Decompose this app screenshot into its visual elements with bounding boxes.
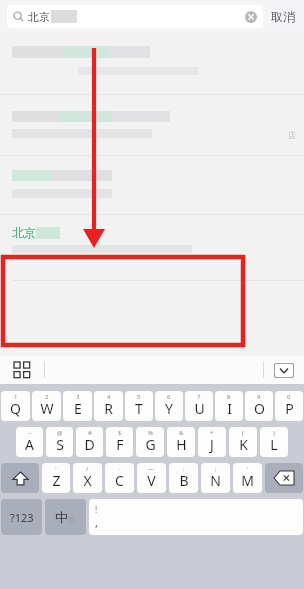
staticText: :	[183, 465, 185, 473]
button[interactable]: #	[76, 427, 103, 457]
button[interactable]: 北京	[7, 5, 263, 28]
staticText: Y	[165, 399, 173, 418]
staticText: H	[176, 435, 187, 454]
button[interactable]: Backspace	[265, 463, 303, 493]
button[interactable]: 中	[45, 499, 86, 535]
staticText: D	[84, 435, 95, 454]
staticText: !	[95, 504, 98, 515]
button[interactable]: ~	[16, 427, 43, 457]
staticText: 店	[288, 130, 296, 140]
staticText: A	[25, 435, 34, 454]
staticText: 2	[45, 393, 49, 401]
button[interactable]: )	[260, 427, 288, 457]
staticText: P	[285, 399, 294, 418]
staticText: U	[194, 399, 205, 418]
button[interactable]: 8	[215, 391, 243, 421]
button[interactable]: 6	[155, 391, 183, 421]
button[interactable]: %	[136, 427, 164, 457]
button[interactable]: 0	[275, 391, 303, 421]
staticText: 9	[257, 393, 261, 401]
button[interactable]: 取消	[271, 9, 295, 24]
staticText: L	[270, 435, 278, 454]
staticText: N	[210, 471, 221, 490]
staticText: —	[148, 465, 155, 473]
button[interactable]: *	[198, 427, 226, 457]
staticText: ·	[119, 465, 121, 473]
button[interactable]: '	[233, 463, 262, 493]
button[interactable]: &	[167, 427, 195, 457]
staticText: 3	[76, 393, 80, 401]
staticText: 6	[167, 393, 171, 401]
staticText: @	[57, 429, 63, 437]
staticText: 1	[14, 393, 18, 401]
staticText: S	[56, 435, 64, 454]
staticText: ~	[28, 429, 32, 437]
button[interactable]: (	[229, 427, 257, 457]
button[interactable]: Hide keyboard	[274, 363, 294, 378]
button[interactable]: Clear	[245, 11, 257, 23]
button[interactable]: 4	[94, 391, 123, 421]
staticText: 取消	[271, 9, 295, 24]
button[interactable]: 7	[185, 391, 213, 421]
staticText: '	[247, 465, 249, 473]
staticText: ,	[95, 515, 98, 530]
staticText: 北京	[12, 225, 36, 240]
staticText: K	[239, 435, 248, 454]
staticText: ?123	[10, 510, 34, 525]
staticText: T	[135, 399, 143, 418]
staticText: #	[88, 429, 92, 437]
staticText: %	[148, 429, 153, 437]
staticText: V	[147, 471, 156, 490]
staticText: (	[242, 429, 244, 437]
staticText: Z	[52, 471, 61, 490]
staticText: )	[273, 429, 275, 437]
button[interactable]: ?123	[1, 499, 42, 535]
button[interactable]: Shift	[1, 463, 39, 493]
staticText: `	[55, 465, 57, 473]
button[interactable]: /	[73, 463, 102, 493]
staticText: M	[241, 471, 254, 490]
button[interactable]: 5	[125, 391, 153, 421]
button[interactable]: 1	[1, 391, 30, 421]
staticText: B	[179, 471, 189, 490]
staticText: X	[83, 471, 92, 490]
staticText: 5	[137, 393, 141, 401]
staticText: ;	[215, 465, 217, 473]
staticText: Q	[10, 399, 21, 418]
staticText: 0	[287, 393, 291, 401]
staticText: I	[227, 399, 232, 418]
staticText: R	[104, 399, 113, 418]
button[interactable]: 2	[32, 391, 61, 421]
button[interactable]: ·	[105, 463, 134, 493]
button[interactable]: Apps	[14, 362, 30, 378]
staticText: &	[179, 429, 184, 437]
staticText: J	[210, 435, 214, 454]
button[interactable]: ;	[201, 463, 230, 493]
staticText: G	[145, 435, 156, 454]
staticText: 英	[68, 515, 76, 525]
button[interactable]: :	[169, 463, 198, 493]
staticText: 4	[107, 393, 111, 401]
staticText: 8	[227, 393, 231, 401]
button[interactable]: —	[137, 463, 166, 493]
button[interactable]: `	[42, 463, 70, 493]
staticText: *	[210, 429, 214, 437]
staticText: E	[74, 399, 82, 418]
staticText: 北京	[28, 10, 50, 24]
staticText: W	[40, 399, 54, 418]
button[interactable]: 9	[245, 391, 273, 421]
staticText: $	[118, 429, 122, 437]
staticText: 中	[55, 509, 68, 525]
button[interactable]: 3	[63, 391, 92, 421]
button[interactable]: $	[106, 427, 133, 457]
button[interactable]: @	[46, 427, 73, 457]
staticText: C	[115, 471, 124, 490]
staticText: /	[86, 465, 89, 473]
button[interactable]: !	[89, 499, 303, 535]
staticText: F	[116, 435, 124, 454]
staticText: O	[254, 399, 265, 418]
staticText: 7	[197, 393, 201, 401]
